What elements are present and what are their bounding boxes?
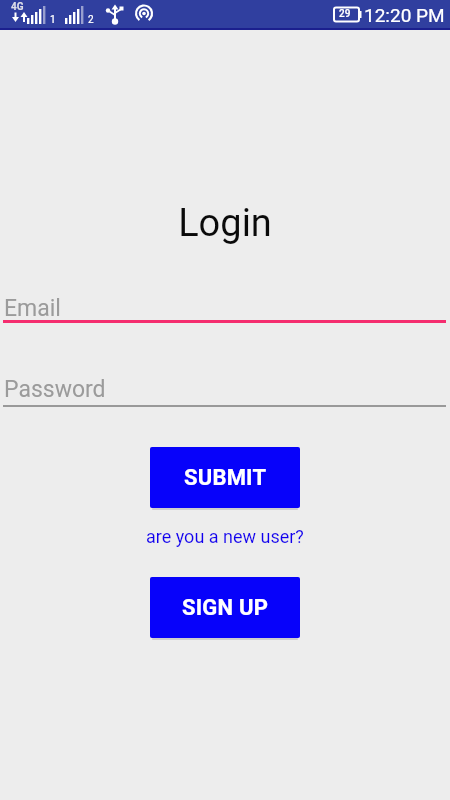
button[interactable]: SUBMIT xyxy=(150,447,300,508)
staticText: 29 xyxy=(339,8,351,20)
staticText: SIGN UP xyxy=(182,595,269,621)
staticText: SUBMIT xyxy=(184,465,267,491)
staticText: 2 xyxy=(88,14,94,26)
button[interactable]: Email xyxy=(3,290,446,323)
staticText: Email xyxy=(4,295,61,322)
staticText: 12:20 PM xyxy=(364,4,445,26)
staticText: 1 xyxy=(50,14,56,26)
staticText: Password xyxy=(4,376,106,403)
button[interactable]: Password xyxy=(3,372,446,407)
staticText: Login xyxy=(178,201,272,246)
staticText: are you a new user? xyxy=(146,526,304,547)
staticText: 4G xyxy=(11,1,24,13)
button[interactable]: are you a new user? xyxy=(0,521,450,551)
button[interactable]: SIGN UP xyxy=(150,577,300,638)
